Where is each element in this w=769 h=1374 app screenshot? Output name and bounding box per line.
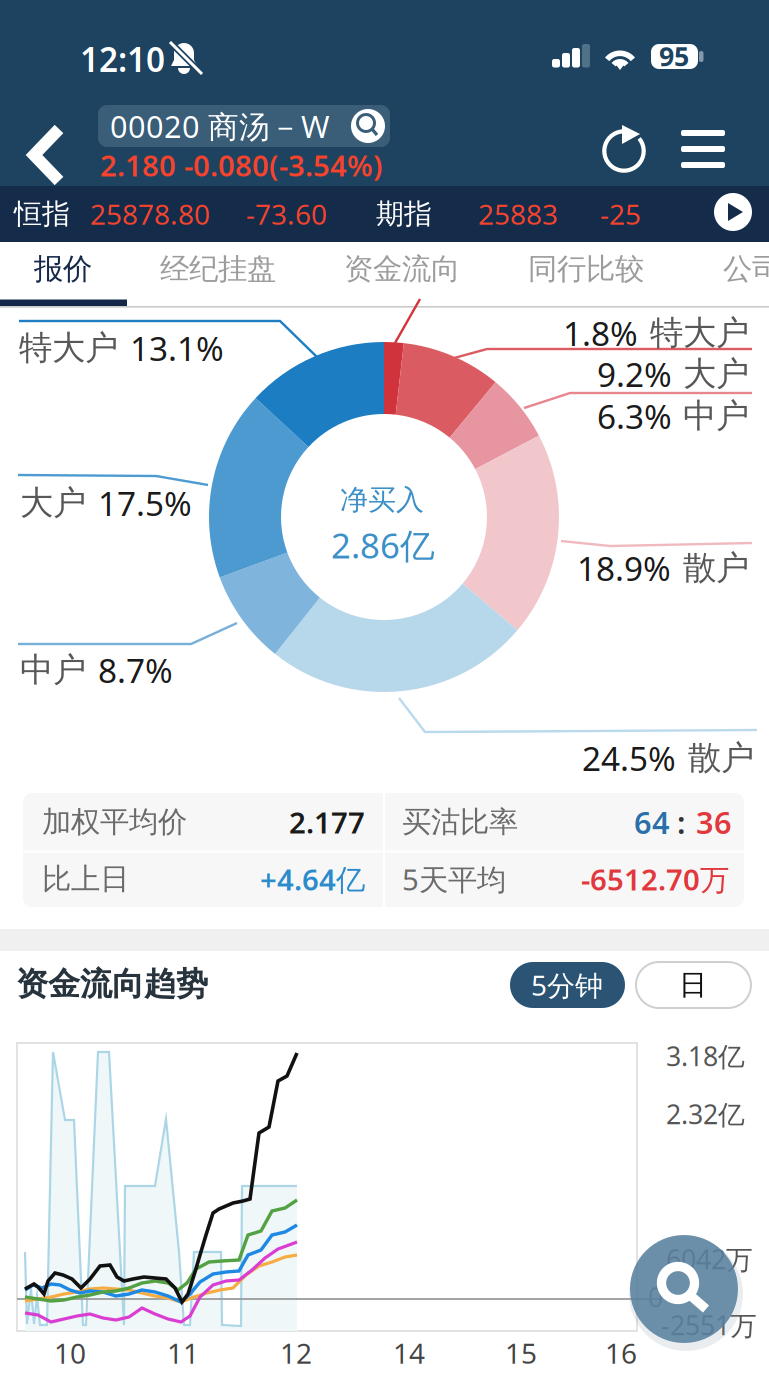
staticText: 25878.80 xyxy=(90,195,210,233)
staticText: 2.180 -0.080(-3.54%) xyxy=(100,145,383,184)
staticText: 14 xyxy=(393,1334,425,1372)
staticText: : xyxy=(677,802,685,842)
staticText: 散户 xyxy=(683,547,749,588)
button[interactable]: Menu xyxy=(669,115,739,185)
staticText: 36 xyxy=(696,802,732,842)
staticText: 同行比较 xyxy=(528,251,644,287)
staticText: 2.177 xyxy=(289,802,365,841)
staticText: 加权平均价 xyxy=(42,804,187,840)
staticText: 中户 xyxy=(20,649,86,690)
staticText: 17.5% xyxy=(98,481,192,525)
staticText: 12:10 xyxy=(80,37,165,81)
staticText: 10 xyxy=(54,1334,86,1372)
staticText: -73.60 xyxy=(246,195,327,233)
staticText: 特大户 xyxy=(650,312,749,353)
staticText: 13.1% xyxy=(130,326,224,370)
staticText: 买沽比率 xyxy=(402,804,518,840)
staticText: 散户 xyxy=(688,737,754,778)
button[interactable]: Back xyxy=(12,118,86,192)
staticText: 大户 xyxy=(20,482,86,523)
staticText: 64 xyxy=(634,802,670,842)
button[interactable]: 公司 xyxy=(697,242,769,300)
staticText: 大户 xyxy=(683,353,749,394)
staticText: 5天平均 xyxy=(402,859,506,898)
staticText: +4.64亿 xyxy=(260,859,365,898)
staticText: 6.3% xyxy=(597,394,672,438)
staticText: 经纪挂盘 xyxy=(160,251,276,287)
staticText: 5分钟 xyxy=(531,966,603,1004)
button[interactable]: 经纪挂盘 xyxy=(143,242,293,300)
button[interactable]: Refresh xyxy=(588,115,658,185)
staticText: -6512.70万 xyxy=(581,859,729,898)
staticText: 8.7% xyxy=(98,648,173,692)
button[interactable]: 5分钟 xyxy=(509,962,624,1008)
staticText: 3.18亿 xyxy=(666,1038,745,1074)
staticText: 25883 xyxy=(478,195,558,233)
staticText: 期指 xyxy=(376,197,432,231)
staticText: 资金流向 xyxy=(344,251,460,287)
staticText: 净买入 xyxy=(340,483,424,517)
staticText: 00020 商汤－W xyxy=(110,106,330,146)
staticText: 资金流向趋势 xyxy=(16,964,208,1004)
staticText: -2551万 xyxy=(661,1307,757,1343)
staticText: 中户 xyxy=(683,395,749,436)
staticText: 1.8% xyxy=(563,311,638,355)
button[interactable]: Play xyxy=(706,185,760,239)
staticText: 15 xyxy=(505,1334,537,1372)
button[interactable]: 00020 商汤－W xyxy=(98,97,392,155)
staticText: 24.5% xyxy=(582,736,676,780)
button[interactable]: 同行比较 xyxy=(511,242,661,300)
staticText: 特大户 xyxy=(19,327,118,368)
staticText: 日 xyxy=(679,968,707,1002)
button[interactable]: Search xyxy=(628,1234,740,1346)
staticText: 11 xyxy=(167,1334,199,1372)
staticText: 6042万 xyxy=(666,1241,753,1277)
staticText: 2.86亿 xyxy=(331,522,435,568)
staticText: 16 xyxy=(605,1334,637,1372)
staticText: 恒指 xyxy=(14,197,70,231)
button[interactable]: 报价 xyxy=(0,242,126,300)
staticText: -25 xyxy=(600,195,641,233)
button[interactable]: 资金流向 xyxy=(327,242,477,300)
staticText: 2.32亿 xyxy=(666,1096,745,1132)
staticText: 9.2% xyxy=(597,352,672,396)
staticText: 12 xyxy=(280,1334,312,1372)
staticText: 公司 xyxy=(723,251,769,287)
staticText: 0 xyxy=(648,1279,663,1315)
staticText: 95 xyxy=(659,38,689,74)
staticText: 报价 xyxy=(34,251,92,287)
staticText: 18.9% xyxy=(577,546,671,590)
button[interactable]: 日 xyxy=(635,962,750,1008)
staticText: 比上日 xyxy=(42,861,129,897)
